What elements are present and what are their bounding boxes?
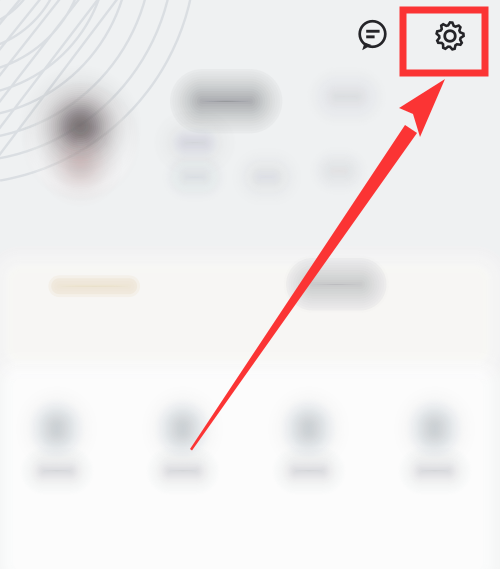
button[interactable]: Messages <box>357 20 389 52</box>
button[interactable]: Quick action <box>0 0 500 569</box>
button[interactable]: Quick action <box>0 0 500 569</box>
button[interactable]: Quick action <box>0 0 500 569</box>
button[interactable]: Settings <box>434 20 466 52</box>
button[interactable]: Quick action <box>0 0 500 569</box>
